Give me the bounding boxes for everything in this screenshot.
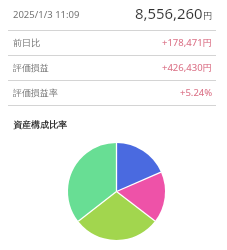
button[interactable]: 前日比: [0, 31, 227, 55]
other: 資産構成比率の円グラフ: [68, 143, 165, 240]
button[interactable]: 評価損益: [0, 56, 227, 80]
staticText: 資産構成比率: [13, 119, 67, 130]
staticText: +426,430円: [162, 61, 213, 74]
staticText: 前日比: [13, 37, 40, 48]
staticText: +178,471円: [162, 36, 213, 49]
staticText: +5.24%: [180, 86, 213, 99]
staticText: 2025/1/3 11:09: [13, 8, 80, 21]
button[interactable]: 評価損益率: [0, 81, 227, 105]
staticText: 評価損益率: [13, 87, 58, 98]
staticText: 評価損益: [13, 62, 49, 73]
staticText: 円: [203, 10, 213, 22]
staticText: 8,556,260: [135, 3, 203, 23]
